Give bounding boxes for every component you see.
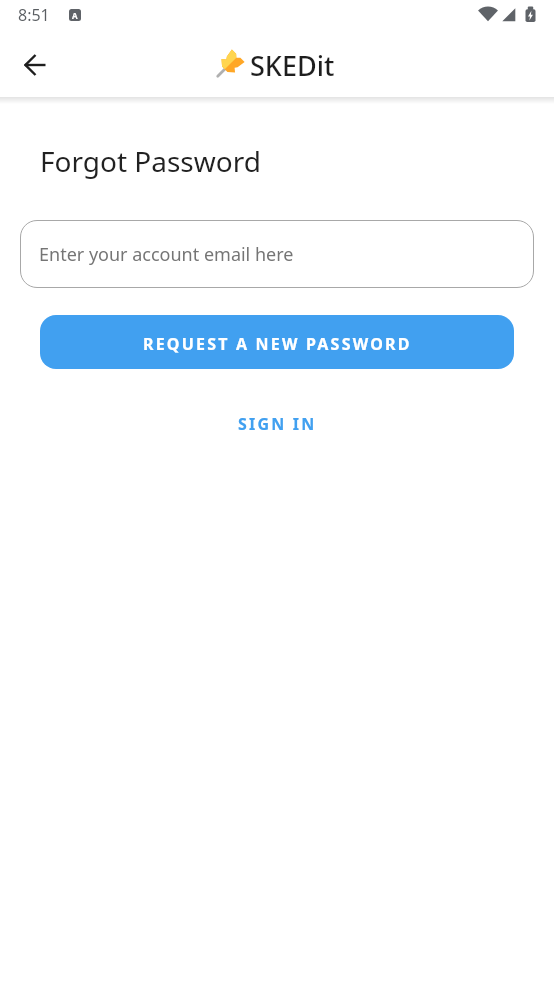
staticText: A	[72, 10, 78, 21]
button[interactable]	[13, 42, 59, 88]
button[interactable]: SIGN IN	[230, 405, 325, 443]
staticText: 8:51	[18, 4, 50, 26]
staticText: Enter your account email here	[39, 242, 294, 267]
button[interactable]: REQUEST A NEW PASSWORD	[40, 315, 514, 369]
staticText: REQUEST A NEW PASSWORD	[143, 333, 412, 355]
staticText: Forgot Password	[40, 142, 261, 180]
staticText: SKEDit	[250, 47, 335, 84]
staticText: SIGN IN	[238, 413, 317, 435]
button[interactable]: Enter your account email here	[20, 220, 534, 288]
